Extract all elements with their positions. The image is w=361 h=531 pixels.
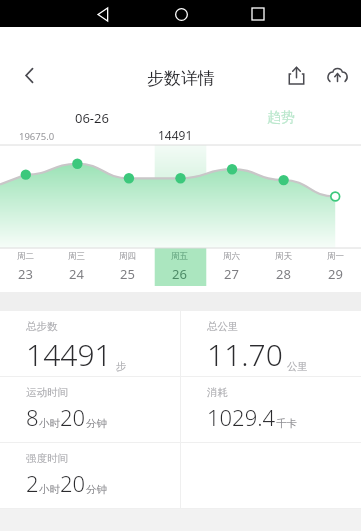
button[interactable]: 总步数 [0,311,180,376]
staticText: 周五 [171,251,188,262]
staticText: 2 [26,468,39,498]
button[interactable]: Back [12,58,46,92]
staticText: 总步数 [26,320,58,333]
button[interactable]: 周一 [309,248,361,286]
button[interactable]: 周三 [51,248,102,286]
staticText: 周一 [327,251,344,262]
staticText: 20 [60,468,86,498]
staticText: 28 [276,265,291,283]
staticText: 1029.4 [207,402,276,432]
button[interactable]: Home [168,1,194,27]
staticText: 19675.0 [19,130,55,143]
staticText: 20 [60,402,86,432]
staticText: 周六 [223,251,240,262]
staticText: 分钟 [86,483,107,496]
staticText: 14491 [158,127,193,143]
staticText: 总公里 [207,320,239,333]
button[interactable]: Share [279,58,313,92]
staticText: 26 [172,265,187,283]
button[interactable]: 消耗 [181,377,361,442]
staticText: 06-26 [75,109,109,127]
staticText: 24 [69,265,84,283]
button[interactable]: 总公里 [181,311,361,376]
button[interactable]: 周六 [205,248,257,286]
staticText: 千卡 [276,417,297,430]
staticText: 运动时间 [26,386,68,399]
button[interactable]: 强度时间 [0,443,180,508]
staticText: 11.70 [207,334,283,375]
button[interactable]: 周二 [0,248,51,286]
staticText: 周三 [68,251,85,262]
staticText: 8 [26,402,39,432]
staticText: 分钟 [86,417,107,430]
button[interactable]: 周天 [257,248,309,286]
staticText: 14491 [26,334,112,375]
staticText: 小时 [39,417,60,430]
staticText: 27 [224,265,239,283]
staticText: 周二 [17,251,34,262]
button[interactable]: 趋势 [267,109,295,127]
button[interactable]: 周五 [153,248,205,286]
staticText: 周天 [275,251,292,262]
staticText: 周四 [119,251,136,262]
staticText: 消耗 [207,386,228,399]
staticText: 23 [18,265,33,283]
button[interactable]: Upload to cloud [320,58,354,92]
staticText: 步 [116,360,127,373]
button[interactable]: Recent apps [245,1,271,27]
staticText: 强度时间 [26,452,68,465]
staticText: 小时 [39,483,60,496]
staticText: 公里 [287,360,308,373]
button[interactable]: Back [90,1,116,27]
button[interactable]: 周四 [102,248,153,286]
staticText: 25 [120,265,135,283]
button[interactable]: 运动时间 [0,377,180,442]
staticText: 29 [328,265,343,283]
staticText: 步数详情 [147,68,215,89]
staticText: 趋势 [267,109,295,127]
